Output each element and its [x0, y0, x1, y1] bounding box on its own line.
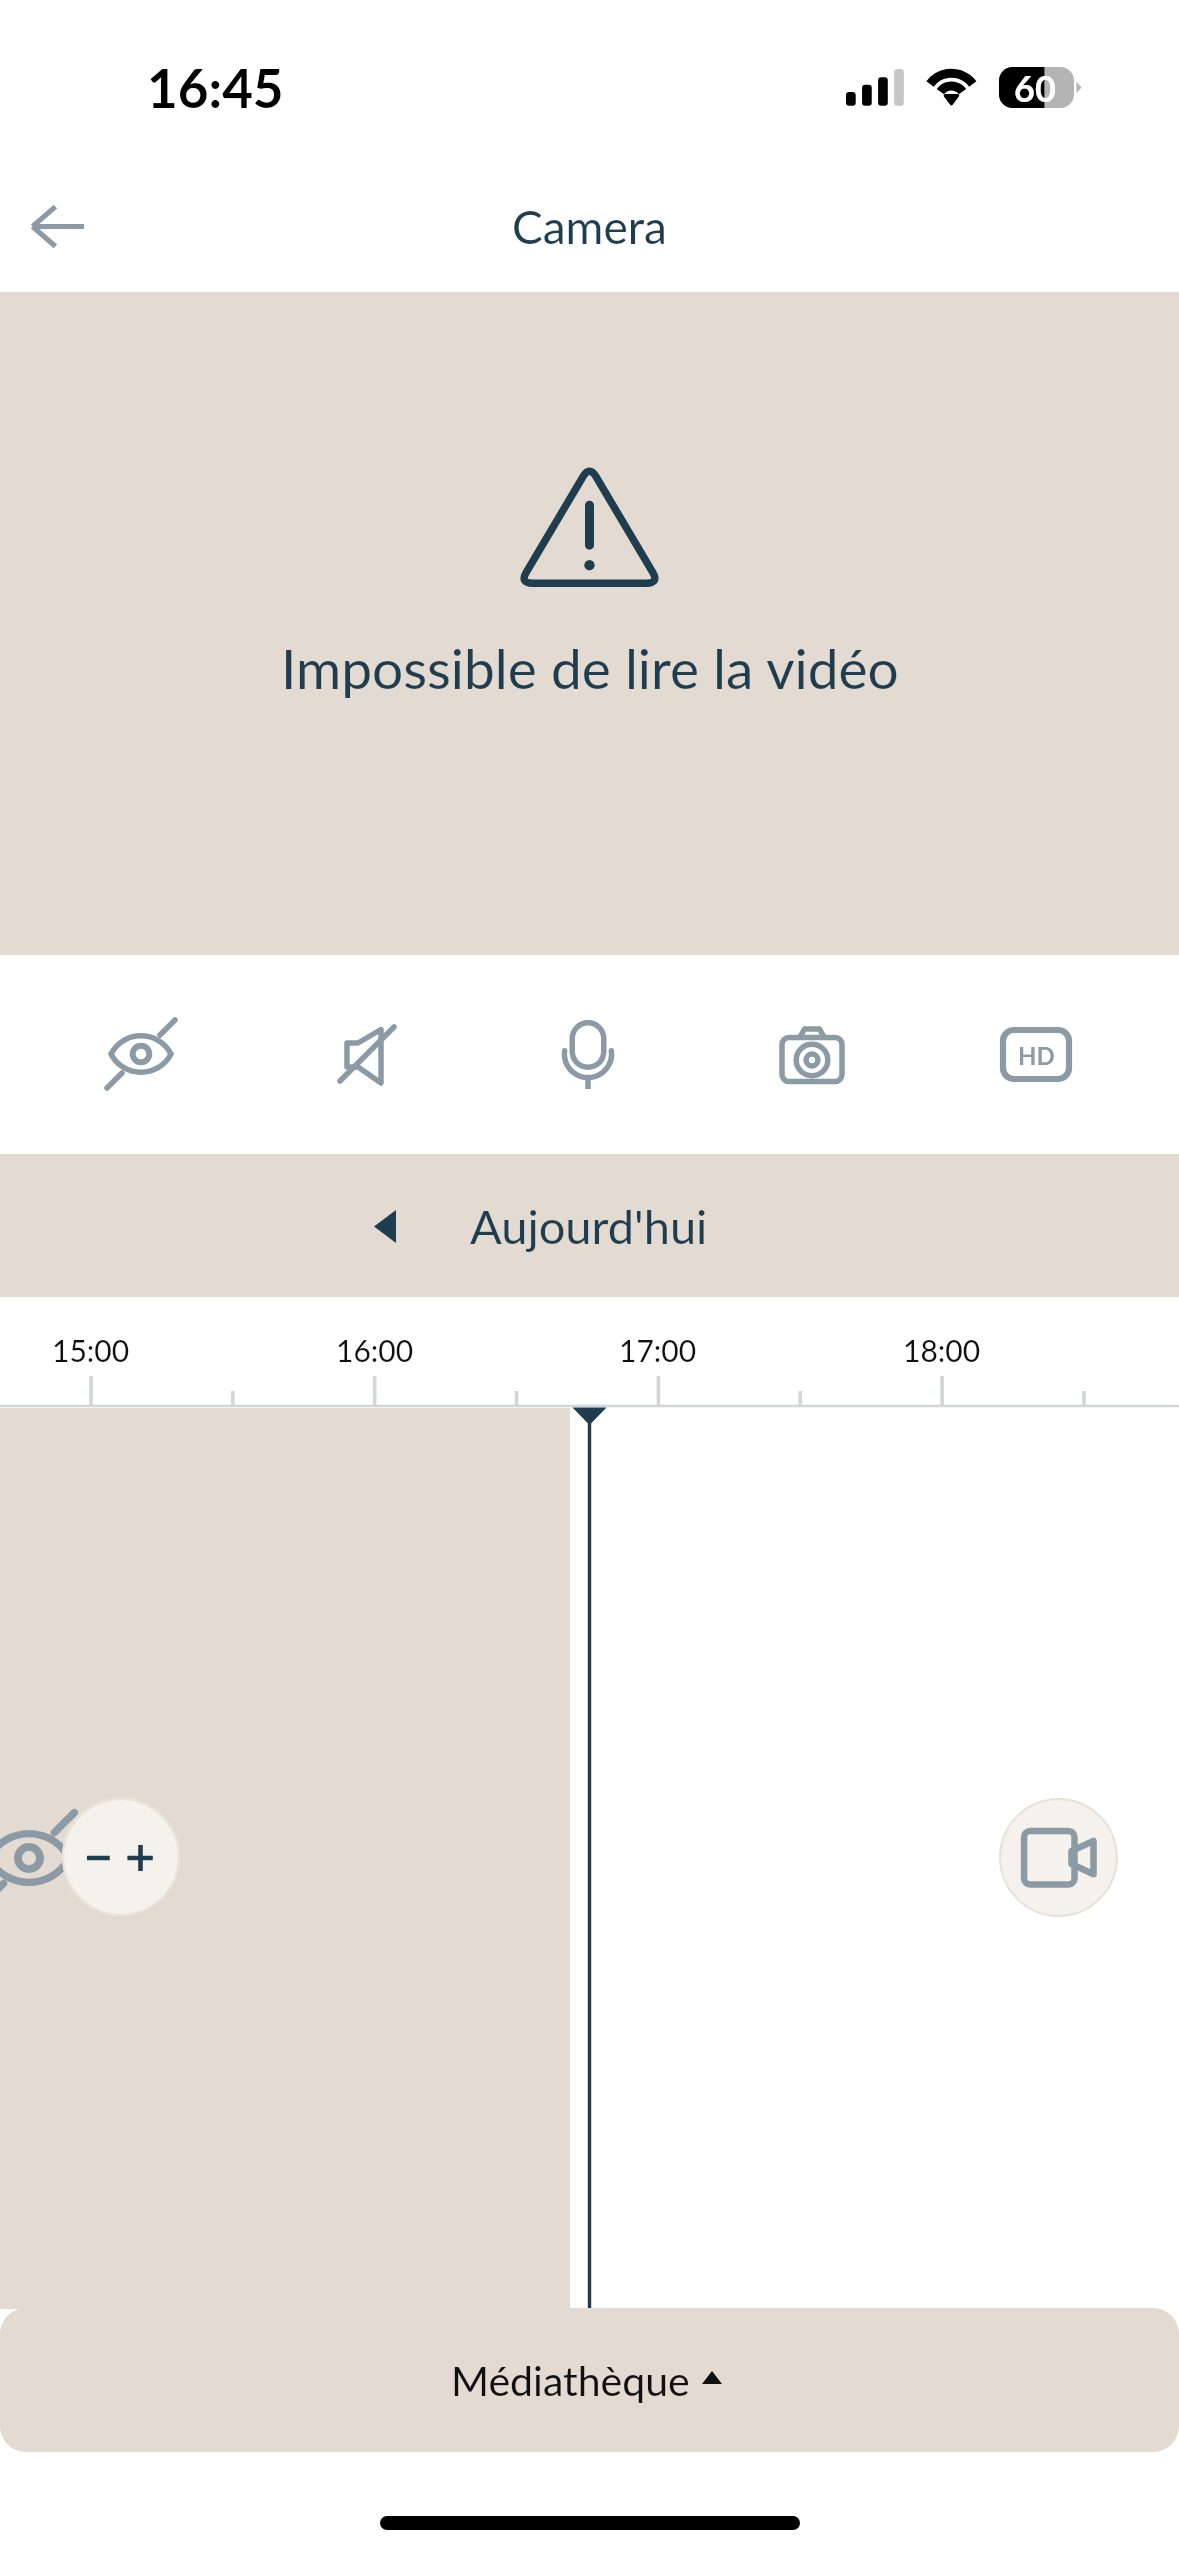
button[interactable]: Record video	[999, 1798, 1118, 1917]
staticText: 15:00	[52, 1332, 130, 1368]
staticText: 17:00	[619, 1332, 697, 1368]
button[interactable]: Aujourd'hui	[0, 1154, 1179, 1297]
button[interactable]: Snapshot	[757, 999, 867, 1109]
button[interactable]: Privacy mode	[86, 999, 196, 1109]
staticText: 16:00	[336, 1332, 414, 1368]
button[interactable]: Médiathèque	[0, 2308, 1179, 2452]
staticText: Aujourd'hui	[470, 1198, 708, 1254]
button[interactable]: Mute	[309, 999, 419, 1109]
staticText: Médiathèque	[451, 2356, 690, 2405]
staticText: Impossible de lire la vidéo	[281, 635, 899, 701]
button[interactable]: Zoom	[62, 1798, 180, 1916]
staticText: 16:45	[147, 56, 284, 120]
staticText: Camera	[512, 199, 667, 254]
button[interactable]: Back	[9, 178, 105, 274]
staticText: 60	[1014, 66, 1056, 107]
button[interactable]: Microphone	[533, 999, 643, 1109]
staticText: HD	[1018, 1041, 1055, 1070]
staticText: 18:00	[903, 1332, 981, 1368]
button[interactable]: HD quality	[981, 999, 1091, 1109]
